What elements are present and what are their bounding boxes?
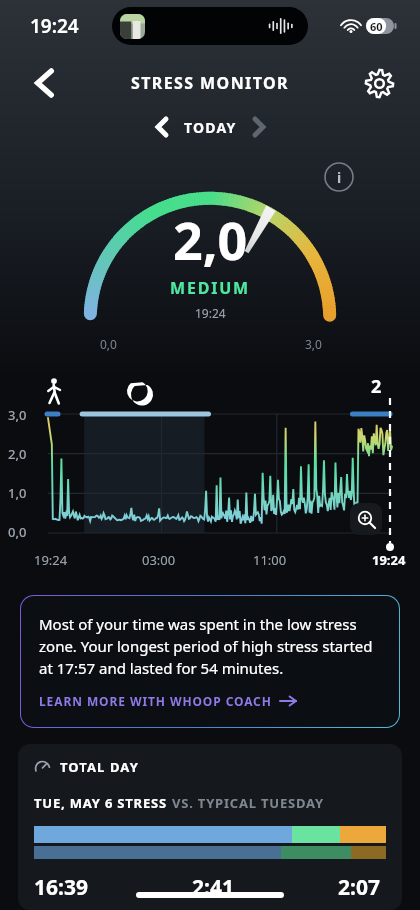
staticText: 11:00 (253, 551, 287, 569)
staticText: 2:41 (192, 873, 234, 896)
staticText: TUE, MAY 6 STRESS (34, 794, 172, 812)
staticText: 0,0 (100, 336, 117, 352)
button[interactable]: Most of your time was spent in the low s… (21, 596, 399, 727)
staticText: 19:24 (34, 551, 68, 569)
staticText: Most of your time was spent in the low s… (39, 614, 381, 679)
staticText: VS. TYPICAL TUESDAY (172, 794, 324, 812)
staticText: 2 (371, 374, 382, 399)
staticText: 3,0 (305, 336, 322, 352)
button[interactable]: TOTAL DAY (18, 744, 402, 910)
staticText: i (337, 168, 342, 187)
button[interactable]: Zoom chart (350, 503, 382, 535)
staticText: 2:07 (338, 873, 380, 896)
staticText: 19:24 (195, 305, 226, 321)
button[interactable]: Next day (243, 111, 275, 143)
staticText: MEDIUM (170, 277, 250, 299)
staticText: 3,0 (8, 406, 27, 424)
staticText: 16:39 (34, 873, 88, 896)
button[interactable]: Back (22, 61, 66, 105)
staticText: STRESS MONITOR (131, 72, 289, 94)
staticText: TOTAL DAY (60, 758, 139, 776)
staticText: 19:24 (372, 551, 406, 569)
staticText: 0,0 (8, 523, 27, 541)
button[interactable]: TODAY (184, 118, 237, 137)
staticText: 60 (370, 19, 383, 34)
staticText: 2,0 (8, 445, 27, 463)
staticText: 03:00 (142, 551, 176, 569)
button[interactable]: Previous day (146, 111, 178, 143)
button[interactable]: Info (324, 162, 354, 192)
staticText: 2,0 (173, 204, 248, 275)
staticText: LEARN MORE WITH WHOOP COACH (39, 693, 272, 709)
staticText: 1,0 (8, 484, 27, 502)
button[interactable]: Settings (356, 60, 402, 106)
staticText: 19:24 (30, 13, 79, 39)
